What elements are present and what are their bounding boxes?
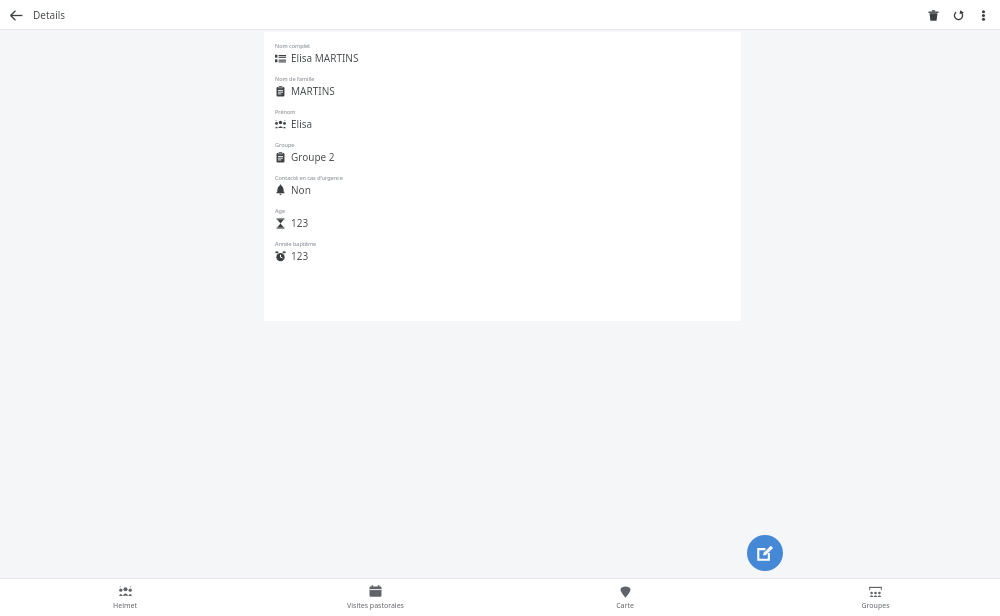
staticText: Groupes [861,601,890,611]
staticText: Elisa MARTINS [291,51,359,65]
button[interactable]: Nom de famille [275,75,741,108]
button[interactable]: Nom complet [275,42,741,75]
staticText: Nom de famille [275,75,315,82]
staticText: 123 [291,249,309,263]
staticText: Helmet [113,601,137,611]
button[interactable]: Contacté en cas d'urgence [275,174,741,207]
staticText: 123 [291,216,309,230]
button[interactable]: Back [7,6,25,24]
staticText: MARTINS [291,84,335,98]
button[interactable]: Helmet [0,579,250,616]
button[interactable]: Carte [500,579,750,616]
staticText: Age [275,207,285,214]
staticText: Année baptême [275,240,317,247]
button[interactable]: Année baptême [275,240,741,273]
staticText: Groupe [275,141,295,148]
button[interactable]: Visites pastorales [250,579,500,616]
staticText: Groupe 2 [291,150,335,164]
button[interactable]: Age [275,207,741,240]
button[interactable]: More options [973,5,993,25]
staticText: Prénom [275,108,296,115]
button[interactable]: Groupes [750,579,1000,616]
staticText: Carte [616,601,634,611]
button[interactable]: Refresh [948,5,968,25]
staticText: Non [291,183,311,197]
staticText: Details [33,8,66,22]
button[interactable]: Prénom [275,108,741,141]
staticText: Elisa [291,117,313,131]
staticText: Nom complet [275,42,311,49]
button[interactable]: Delete [923,5,943,25]
button[interactable]: Groupe [275,141,741,174]
button[interactable]: Edit [747,535,783,571]
staticText: Contacté en cas d'urgence [275,174,343,181]
staticText: Visites pastorales [347,601,404,611]
